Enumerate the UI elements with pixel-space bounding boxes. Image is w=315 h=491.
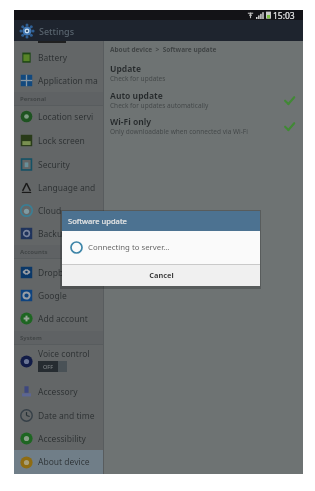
button[interactable]: Dropbox — [14, 261, 103, 284]
staticText: Connecting to server... — [88, 242, 170, 253]
staticText: Security — [38, 159, 70, 171]
staticText: Software update — [68, 216, 127, 226]
button[interactable]: Google — [14, 284, 103, 307]
staticText: Only downloadable when connected via Wi-… — [110, 127, 248, 136]
button[interactable]: Battery — [14, 46, 103, 69]
staticText: Check for updates automatically — [110, 101, 209, 110]
staticText: About device > Software update — [110, 45, 217, 54]
button[interactable]: Accessory — [14, 380, 103, 403]
staticText: Cancel — [149, 270, 174, 280]
button[interactable]: Security — [14, 153, 103, 176]
staticText: Add account — [38, 313, 88, 325]
button[interactable]: Location servi — [14, 105, 103, 128]
staticText: Auto update — [110, 90, 163, 102]
staticText: Voice control — [38, 348, 90, 360]
button[interactable]: Update — [104, 60, 303, 86]
staticText: Accessibility — [38, 433, 86, 445]
staticText: Date and time — [38, 410, 95, 422]
staticText: Location servi — [38, 111, 94, 123]
staticText: Accounts — [20, 248, 48, 256]
staticText: 15:03 — [273, 10, 295, 20]
staticText: OFF — [43, 363, 54, 370]
staticText: Google — [38, 290, 67, 302]
button[interactable]: About device — [14, 450, 103, 474]
staticText: Backup and re — [38, 228, 96, 240]
staticText: Lock screen — [38, 135, 85, 147]
staticText: Settings — [39, 25, 75, 37]
button[interactable]: Lock screen — [14, 129, 103, 152]
staticText: Cloud — [38, 205, 62, 217]
staticText: System — [20, 334, 42, 342]
staticText: Check for updates — [110, 74, 166, 83]
button[interactable]: Wi-Fi only — [104, 113, 303, 139]
staticText: Battery — [38, 52, 68, 64]
button[interactable]: Cancel — [62, 265, 260, 286]
other: Settings — [20, 24, 34, 38]
staticText: Wi-Fi only — [110, 116, 152, 128]
staticText: Personal — [20, 95, 47, 103]
staticText: About device — [38, 456, 90, 468]
button[interactable]: Auto update — [104, 87, 303, 113]
staticText: Update — [110, 63, 142, 75]
button[interactable]: Accessibility — [14, 427, 103, 450]
staticText: Application ma — [38, 75, 98, 87]
button[interactable]: Voice control — [14, 346, 103, 380]
staticText: Accessory — [38, 386, 78, 398]
button[interactable]: Backup and re — [14, 222, 103, 245]
staticText: Dropbox — [38, 267, 73, 279]
staticText: Language and — [38, 182, 96, 194]
button[interactable]: Application ma — [14, 69, 103, 92]
button[interactable]: Language and — [14, 176, 103, 199]
button[interactable]: Date and time — [14, 404, 103, 427]
button[interactable]: Cloud — [14, 199, 103, 222]
button[interactable]: Add account — [14, 307, 103, 330]
